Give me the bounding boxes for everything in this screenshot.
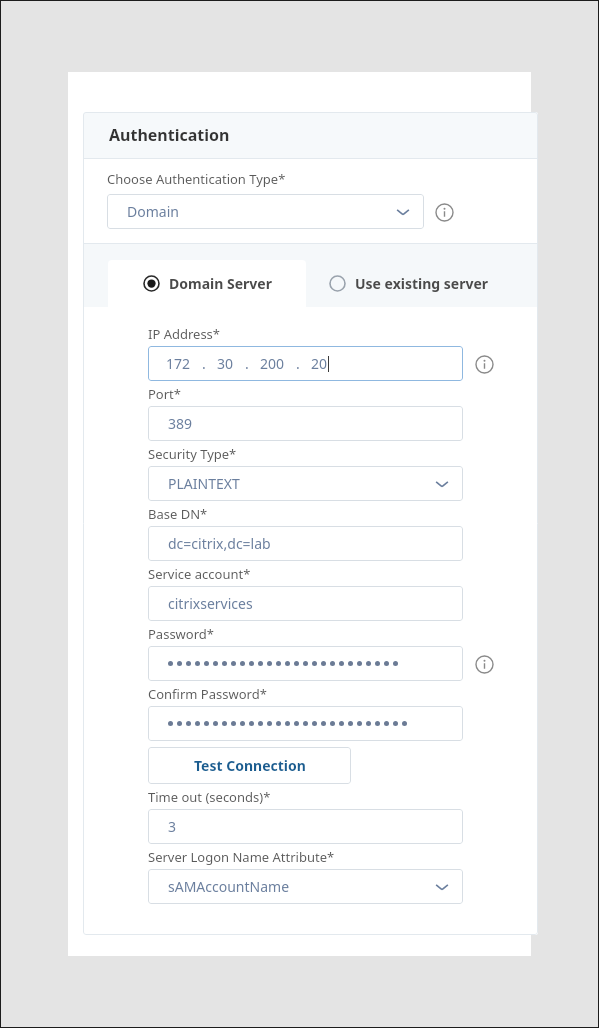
staticText: Time out (seconds)* xyxy=(148,788,271,806)
staticText: Confirm Password* xyxy=(148,685,267,703)
staticText: 30 xyxy=(217,354,234,373)
button[interactable]: Domain Server xyxy=(108,260,306,307)
button[interactable]: Password information xyxy=(473,653,495,675)
staticText: Test Connection xyxy=(194,756,306,775)
button[interactable]: 3 xyxy=(148,809,463,844)
staticText: . xyxy=(296,354,300,373)
button[interactable]: Test Connection xyxy=(148,747,351,784)
staticText: 172 xyxy=(166,354,191,373)
staticText: 389 xyxy=(168,414,193,433)
staticText: Security Type* xyxy=(148,445,237,463)
staticText: Base DN* xyxy=(148,505,208,523)
staticText: . xyxy=(245,354,249,373)
staticText: . xyxy=(202,354,206,373)
staticText: Authentication xyxy=(109,124,230,146)
staticText: citrixservices xyxy=(168,594,253,613)
staticText: Domain Server xyxy=(169,274,272,293)
button[interactable]: Authentication type information xyxy=(433,201,455,223)
button[interactable]: IP address information xyxy=(473,353,495,375)
staticText: Choose Authentication Type* xyxy=(107,170,286,188)
staticText: Server Logon Name Attribute* xyxy=(148,848,335,866)
staticText: 3 xyxy=(168,817,177,836)
button[interactable]: Select Domain xyxy=(107,194,424,229)
staticText: Service account* xyxy=(148,565,251,583)
staticText: Domain xyxy=(127,202,179,221)
staticText: Use existing server xyxy=(355,274,489,293)
button[interactable]: Use existing server xyxy=(306,260,538,307)
button[interactable]: 172 xyxy=(148,346,463,381)
button[interactable]: Select sAMAccountName xyxy=(148,869,463,904)
staticText: IP Address* xyxy=(148,325,221,343)
button[interactable]: 389 xyxy=(148,406,463,441)
button[interactable]: citrixservices xyxy=(148,586,463,621)
staticText: Port* xyxy=(148,385,181,403)
button[interactable]: dc=citrix,dc=lab xyxy=(148,526,463,561)
staticText: 20 xyxy=(311,354,328,373)
staticText: 200 xyxy=(260,354,285,373)
button[interactable]: Select PLAINTEXT xyxy=(148,466,463,501)
button[interactable] xyxy=(148,706,463,741)
staticText: sAMAccountName xyxy=(168,877,290,896)
staticText: dc=citrix,dc=lab xyxy=(168,534,271,553)
staticText: PLAINTEXT xyxy=(168,474,240,493)
button[interactable] xyxy=(148,646,463,681)
staticText: Password* xyxy=(148,625,214,643)
